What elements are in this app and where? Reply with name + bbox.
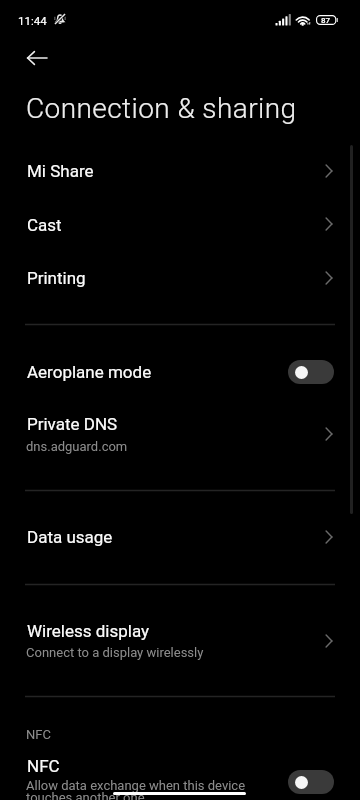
button[interactable]: Back [14,38,59,78]
button[interactable]: NFC [288,770,334,794]
button[interactable]: Cast [0,197,360,250]
button[interactable]: Data usage [0,516,360,569]
button[interactable]: NFC [0,750,360,800]
staticText: 87 [321,16,331,25]
staticText: Wireless display [27,621,150,641]
staticText: Connection & sharing [26,92,297,125]
staticText: Connect to a display wirelessly [26,645,204,660]
staticText: Aeroplane mode [27,362,152,382]
staticText: Allow data exchange when this device [26,778,246,793]
staticText: NFC [27,756,60,776]
staticText: NFC [26,727,51,742]
staticText: Private DNS [27,414,118,434]
staticText: Cast [27,215,62,235]
staticText: Mi Share [27,161,94,181]
button[interactable]: Printing [0,250,360,303]
staticText: Printing [27,268,86,288]
staticText: touches another one [26,790,145,800]
staticText: Data usage [27,527,113,547]
staticText: dns.adguard.com [26,439,128,454]
staticText: 11:44 [18,14,47,27]
button[interactable]: Aeroplane mode [288,360,334,384]
button[interactable]: Wireless display [0,608,360,670]
button[interactable]: Private DNS [0,400,360,462]
button[interactable]: Mi Share [0,144,360,197]
button[interactable]: Aeroplane mode [0,349,360,398]
